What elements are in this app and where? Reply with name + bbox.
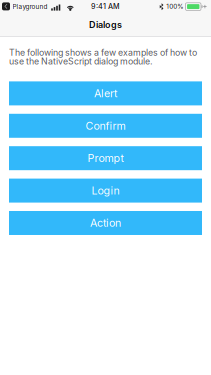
staticText: Action	[90, 216, 121, 229]
staticText: 9:41 AM	[91, 2, 120, 11]
staticText: Confirm	[85, 119, 125, 132]
staticText: Alert	[94, 87, 117, 100]
staticText: The following shows a few examples of ho…	[9, 48, 197, 66]
button[interactable]: Login	[9, 179, 202, 203]
staticText: Login	[91, 184, 119, 197]
staticText: Playground	[13, 3, 48, 11]
button[interactable]: Confirm	[9, 114, 202, 138]
staticText: 100%	[166, 3, 183, 10]
staticText: Dialogs	[89, 19, 122, 30]
button[interactable]: Prompt	[9, 146, 202, 170]
button[interactable]: Action	[9, 211, 202, 235]
button[interactable]: Alert	[9, 81, 202, 105]
staticText: Prompt	[87, 152, 123, 165]
